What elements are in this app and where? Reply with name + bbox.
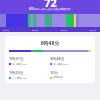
staticText: 1時37分 <box>9 56 24 61</box>
staticText: レム睡眠 20% <box>12 76 28 79</box>
staticText: 80%のユーザーよりも良い睡眠です <box>29 7 71 11</box>
staticText: 1時23分 <box>9 70 24 75</box>
button[interactable]: 1時23分 <box>9 70 50 79</box>
staticText: 6時48分 <box>9 40 91 47</box>
staticText: 覚醒時間 <box>53 76 63 79</box>
staticText: 23:19 <box>3 28 10 31</box>
staticText: 3時48分 <box>50 56 65 61</box>
button[interactable]: 1時37分 <box>9 56 50 65</box>
staticText: 00:38 <box>32 28 39 31</box>
staticText: 浅い睡眠 56% <box>53 62 68 65</box>
button[interactable]: 10分 <box>50 70 91 79</box>
button[interactable]: 3時48分 <box>50 56 91 65</box>
staticText: 05:17 <box>90 28 97 31</box>
staticText: 72 <box>44 0 57 9</box>
staticText: 10分 <box>50 70 59 75</box>
button[interactable]: 6時48分 <box>5 36 95 83</box>
staticText: 02:57 <box>61 28 68 31</box>
staticText: 深い睡眠 24% <box>12 62 27 65</box>
